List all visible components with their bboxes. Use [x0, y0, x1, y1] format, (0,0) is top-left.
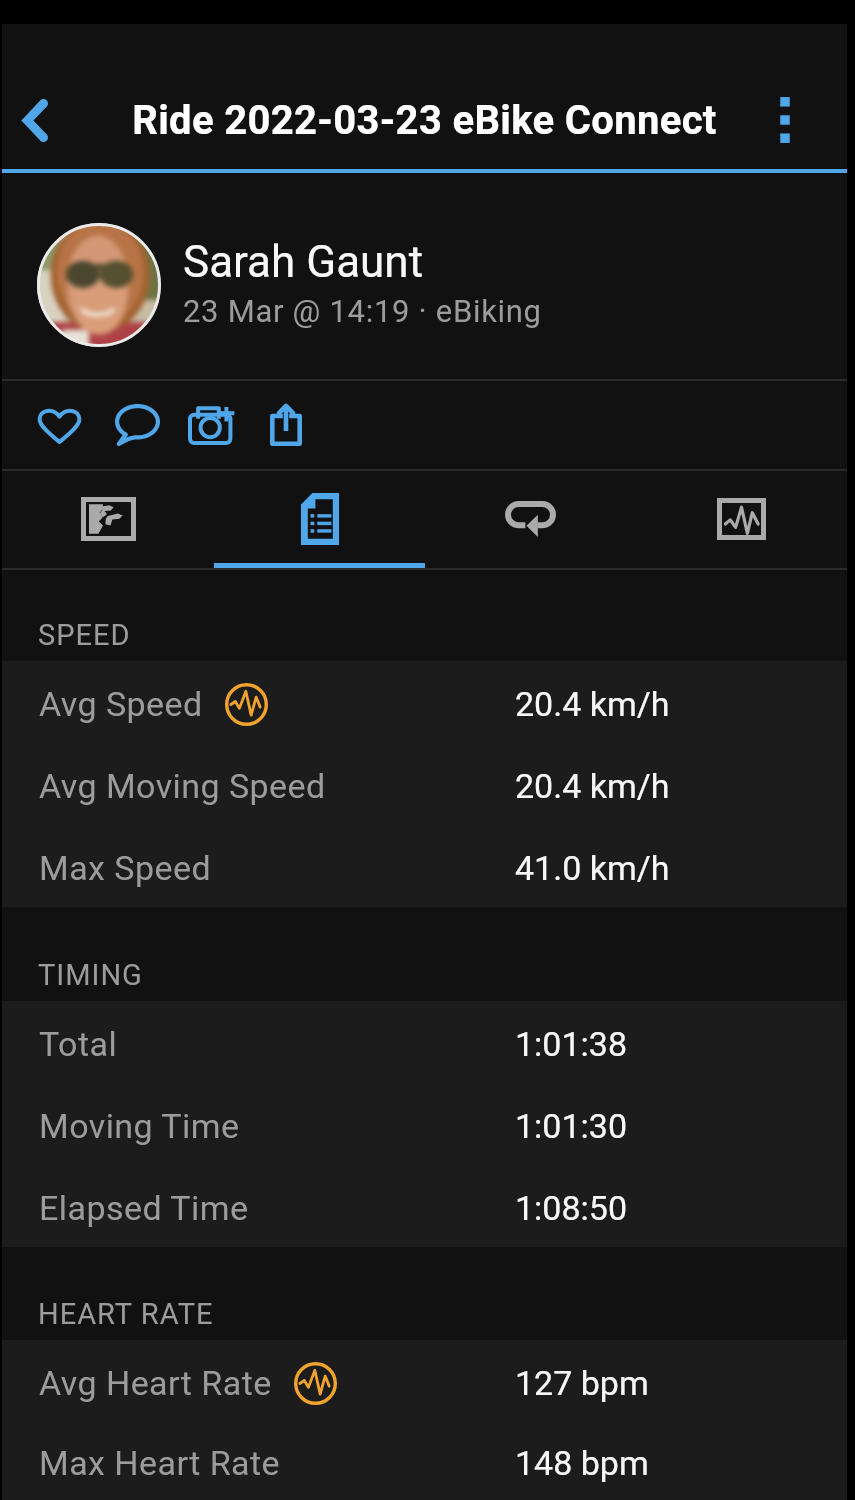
button[interactable]: Max Speed: [2, 825, 847, 907]
staticText: 1:01:38: [515, 1024, 628, 1064]
button[interactable]: Map: [2, 471, 214, 568]
staticText: 1:01:30: [515, 1106, 628, 1146]
staticText: Avg Moving Speed: [39, 766, 326, 806]
staticText: 1:08:50: [515, 1188, 628, 1228]
button[interactable]: Laps: [425, 471, 636, 568]
button[interactable]: Total: [2, 1001, 847, 1083]
button[interactable]: Like: [21, 381, 97, 469]
button[interactable]: Charts: [636, 471, 847, 568]
button[interactable]: Elapsed Time: [2, 1165, 847, 1247]
staticText: HEART RATE: [38, 1297, 214, 1331]
staticText: Max Speed: [39, 848, 212, 888]
button[interactable]: Back: [2, 71, 69, 169]
staticText: Total: [39, 1024, 118, 1064]
staticText: 23 Mar @ 14:19 · eBiking: [183, 293, 542, 329]
staticText: Ride 2022-03-23 eBike Connect: [2, 97, 847, 144]
staticText: 20.4 km/h: [515, 766, 670, 806]
staticText: Avg Heart Rate: [39, 1363, 272, 1403]
button[interactable]: More options: [723, 71, 847, 169]
button[interactable]: Max Heart Rate: [2, 1422, 847, 1500]
button[interactable]: Avg Heart Rate: [2, 1340, 847, 1422]
staticText: 127 bpm: [515, 1363, 649, 1403]
staticText: Elapsed Time: [39, 1188, 249, 1228]
staticText: SPEED: [38, 618, 131, 652]
staticText: 148 bpm: [515, 1443, 649, 1483]
button[interactable]: Add photo: [173, 381, 249, 469]
staticText: 20.4 km/h: [515, 684, 670, 724]
button[interactable]: Details: [214, 471, 425, 568]
button[interactable]: Comment: [99, 381, 175, 469]
staticText: Moving Time: [39, 1106, 240, 1146]
button[interactable]: Moving Time: [2, 1083, 847, 1165]
staticText: Avg Speed: [39, 684, 203, 724]
staticText: Max Heart Rate: [39, 1443, 281, 1483]
button[interactable]: Share: [248, 381, 324, 469]
button[interactable]: Avg Moving Speed: [2, 743, 847, 825]
button[interactable]: Avg Speed: [2, 661, 847, 743]
staticText: TIMING: [38, 958, 143, 992]
staticText: 41.0 km/h: [515, 848, 670, 888]
staticText: Sarah Gaunt: [183, 236, 424, 288]
